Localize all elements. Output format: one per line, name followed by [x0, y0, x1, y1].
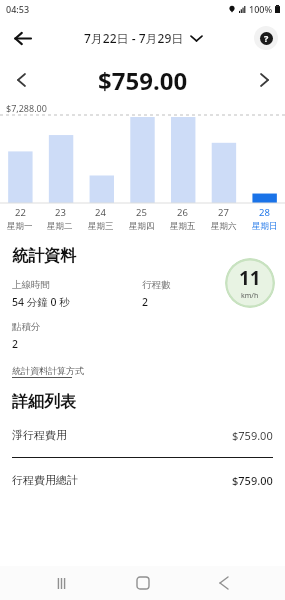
- staticText: 淨行程費用: [12, 428, 67, 442]
- staticText: 22: [15, 206, 26, 219]
- staticText: 27: [218, 206, 229, 219]
- staticText: 24: [95, 206, 106, 219]
- staticText: 星期三: [88, 221, 114, 232]
- button[interactable]: 27: [203, 206, 244, 232]
- staticText: 行程費用總計: [12, 473, 78, 487]
- staticText: 星期一: [7, 221, 33, 232]
- staticText: 星期四: [129, 221, 155, 232]
- staticText: $7,288.00: [6, 102, 47, 114]
- staticText: 04:53: [6, 3, 30, 15]
- staticText: 7月22日 - 7月29日: [84, 30, 184, 46]
- button[interactable]: Recents: [40, 566, 82, 600]
- button[interactable]: 統計資料計算方式: [12, 365, 84, 378]
- button[interactable]: Home: [122, 566, 164, 600]
- staticText: 星期五: [170, 221, 196, 232]
- button[interactable]: Back: [203, 566, 245, 600]
- staticText: 星期二: [47, 221, 73, 232]
- staticText: 點積分: [12, 321, 41, 333]
- staticText: 統計資料計算方式: [12, 365, 84, 376]
- button[interactable]: Back: [6, 22, 38, 54]
- staticText: 星期日: [252, 221, 278, 232]
- staticText: $759.00: [98, 64, 188, 97]
- button[interactable]: Next week: [249, 65, 279, 95]
- staticText: 星期六: [211, 221, 237, 232]
- staticText: 詳細列表: [12, 392, 76, 412]
- staticText: 100%: [249, 3, 273, 15]
- staticText: 23: [55, 206, 66, 219]
- button[interactable]: 行程費用總計: [12, 473, 273, 488]
- staticText: 28: [259, 206, 270, 219]
- button[interactable]: 28: [244, 206, 285, 232]
- button[interactable]: 淨行程費用: [12, 428, 273, 443]
- staticText: 26: [177, 206, 188, 219]
- button[interactable]: 7月22日 - 7月29日: [80, 27, 206, 49]
- staticText: 行程數: [142, 279, 171, 291]
- button[interactable]: 22: [0, 206, 40, 232]
- button[interactable]: Help: [254, 26, 278, 50]
- button[interactable]: Current speed 11 km/h: [225, 258, 275, 308]
- staticText: 統計資料: [12, 246, 76, 266]
- staticText: 2: [12, 337, 19, 351]
- staticText: $759.00: [232, 473, 273, 488]
- staticText: 25: [136, 206, 147, 219]
- staticText: km/h: [241, 291, 259, 301]
- staticText: 2: [142, 295, 149, 309]
- staticText: 54 分鐘 0 秒: [12, 295, 70, 309]
- button[interactable]: 25: [121, 206, 162, 232]
- button[interactable]: Previous week: [6, 65, 36, 95]
- button[interactable]: 23: [40, 206, 80, 232]
- staticText: ?: [264, 32, 269, 44]
- staticText: $759.00: [232, 428, 273, 443]
- staticText: 上線時間: [12, 279, 50, 291]
- button[interactable]: 24: [80, 206, 121, 232]
- staticText: 11: [239, 265, 261, 291]
- button[interactable]: 26: [162, 206, 203, 232]
